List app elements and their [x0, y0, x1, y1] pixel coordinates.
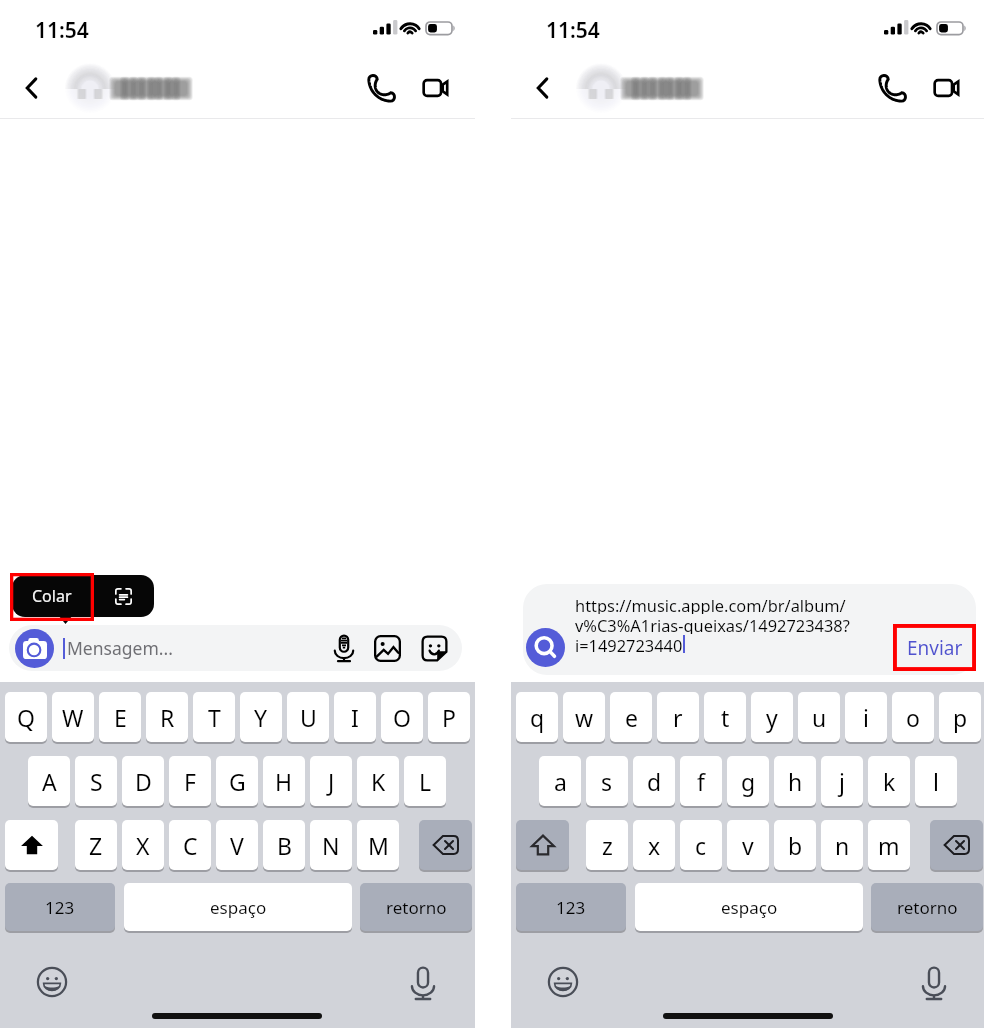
button[interactable]: i	[845, 692, 887, 742]
button[interactable]: 123	[5, 883, 115, 931]
button[interactable]: Stickers	[414, 628, 454, 668]
button[interactable]: Search	[526, 628, 565, 667]
button[interactable]: s	[586, 756, 628, 806]
button[interactable]: E	[99, 692, 141, 742]
button[interactable]: v	[727, 820, 769, 870]
button[interactable]: g	[727, 756, 769, 806]
staticText: e	[625, 702, 638, 733]
button[interactable]: M	[357, 820, 399, 870]
button[interactable]: B	[263, 820, 305, 870]
button[interactable]: L	[404, 756, 446, 806]
button[interactable]: Call	[869, 66, 913, 110]
button[interactable]: Dictation	[914, 963, 954, 1003]
button[interactable]: Gallery	[367, 628, 407, 668]
button[interactable]: r	[657, 692, 699, 742]
button[interactable]: Colar	[12, 575, 92, 617]
button[interactable]: y	[751, 692, 793, 742]
button[interactable]: retorno	[360, 883, 472, 931]
button[interactable]: retorno	[871, 883, 983, 931]
button[interactable]: V	[216, 820, 258, 870]
button[interactable]: D	[122, 756, 164, 806]
button[interactable]: j	[821, 756, 863, 806]
button[interactable]: x	[633, 820, 675, 870]
button[interactable]: Emoji	[32, 962, 72, 1002]
button[interactable]: w	[563, 692, 605, 742]
button[interactable]: Dictation	[403, 963, 443, 1003]
button[interactable]: J	[310, 756, 352, 806]
button[interactable]: T	[193, 692, 235, 742]
button[interactable]: e	[610, 692, 652, 742]
button[interactable]: Backspace	[930, 820, 983, 870]
button[interactable]: Z	[75, 820, 117, 870]
staticText: i	[863, 702, 869, 733]
button[interactable]: n	[821, 820, 863, 870]
button[interactable]: Q	[5, 692, 47, 742]
button[interactable]: Back	[521, 66, 565, 110]
staticText: 123	[45, 896, 75, 919]
button[interactable]: Emoji	[543, 962, 583, 1002]
button[interactable]: Camera	[15, 629, 54, 668]
button[interactable]: u	[798, 692, 840, 742]
staticText: W	[62, 702, 84, 733]
button[interactable]: b	[774, 820, 816, 870]
button[interactable]: q	[516, 692, 558, 742]
button[interactable]: Back	[10, 66, 54, 110]
button[interactable]: m	[868, 820, 910, 870]
button[interactable]: o	[892, 692, 934, 742]
button[interactable]: d	[633, 756, 675, 806]
button[interactable]: Video call	[925, 66, 969, 110]
button[interactable]: K	[357, 756, 399, 806]
button[interactable]: X	[122, 820, 164, 870]
button[interactable]: t	[704, 692, 746, 742]
button[interactable]: H	[263, 756, 305, 806]
button[interactable]: I	[334, 692, 376, 742]
button[interactable]: Y	[240, 692, 282, 742]
staticText: Colar	[32, 585, 72, 607]
button[interactable]: P	[428, 692, 470, 742]
button[interactable]: S	[75, 756, 117, 806]
staticText: h	[788, 766, 803, 797]
button[interactable]: l	[915, 756, 957, 806]
button[interactable]: f	[680, 756, 722, 806]
staticText: p	[953, 702, 968, 733]
button[interactable]: c	[680, 820, 722, 870]
button[interactable]: z	[586, 820, 628, 870]
button[interactable]: U	[287, 692, 329, 742]
button[interactable]: A	[28, 756, 70, 806]
button[interactable]: Shift	[5, 820, 58, 870]
button[interactable]: G	[216, 756, 258, 806]
button[interactable]: espaço	[635, 883, 863, 931]
staticText: a	[554, 766, 567, 797]
button[interactable]: Shift	[516, 820, 569, 870]
staticText: U	[300, 702, 317, 733]
staticText: B	[277, 830, 292, 861]
button[interactable]: espaço	[124, 883, 352, 931]
button[interactable]: C	[169, 820, 211, 870]
button[interactable]: O	[381, 692, 423, 742]
button[interactable]: W	[52, 692, 94, 742]
button[interactable]: F	[169, 756, 211, 806]
staticText: l	[933, 766, 939, 797]
staticText: g	[741, 766, 756, 797]
button[interactable]: Video call	[414, 66, 458, 110]
button[interactable]: Scan text	[92, 575, 154, 617]
button[interactable]: k	[868, 756, 910, 806]
staticText: A	[42, 766, 57, 797]
button[interactable]: p	[939, 692, 981, 742]
button[interactable]: Enviar	[893, 624, 976, 671]
staticText: 123	[556, 896, 586, 919]
button[interactable]: Voice message	[324, 628, 364, 668]
staticText: D	[135, 766, 152, 797]
staticText: H	[275, 766, 293, 797]
staticText: Enviar	[907, 635, 963, 661]
button[interactable]: Call	[358, 66, 402, 110]
button[interactable]: a	[539, 756, 581, 806]
staticText: N	[322, 830, 340, 861]
button[interactable]: h	[774, 756, 816, 806]
button[interactable]: 123	[516, 883, 626, 931]
staticText: m	[878, 830, 900, 861]
button[interactable]: N	[310, 820, 352, 870]
staticText: w	[575, 702, 594, 733]
button[interactable]: Backspace	[419, 820, 472, 870]
button[interactable]: R	[146, 692, 188, 742]
